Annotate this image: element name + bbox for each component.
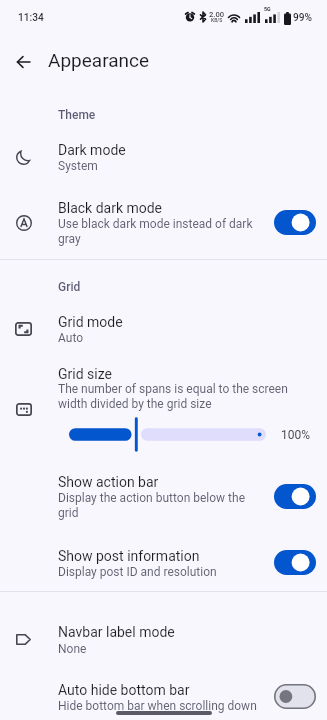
staticText: Display post ID and resolution — [58, 565, 263, 579]
staticText: None — [58, 642, 298, 656]
staticText: Use black dark mode instead of dark gray — [58, 217, 263, 246]
staticText: 2.00 — [209, 10, 225, 19]
staticText: 100% — [281, 428, 311, 442]
staticText: 11:34 — [18, 12, 44, 24]
button[interactable]: On — [274, 210, 316, 235]
staticText: Grid mode — [58, 314, 308, 330]
staticText: Hide bottom bar when scrolling down — [58, 699, 298, 713]
staticText: Appearance — [48, 49, 150, 71]
button[interactable]: Grid size — [0, 360, 327, 418]
button[interactable]: Off — [274, 684, 316, 709]
staticText: Dark mode — [58, 142, 308, 158]
staticText: Auto — [58, 331, 298, 345]
staticText: Grid size — [58, 366, 308, 382]
staticText: 5G — [264, 6, 271, 12]
staticText: Auto hide bottom bar — [58, 682, 308, 698]
staticText: 99% — [293, 12, 313, 24]
button[interactable]: Dark mode — [0, 136, 327, 181]
button[interactable]: Auto hide bottom bar — [0, 676, 327, 720]
button[interactable]: On — [274, 550, 316, 575]
staticText: Navbar label mode — [58, 624, 308, 640]
button[interactable]: On — [274, 484, 316, 509]
staticText: Show action bar — [58, 474, 308, 490]
staticText: Show post information — [58, 548, 308, 564]
button[interactable]: Navbar label mode — [0, 618, 327, 663]
button[interactable]: Show action bar — [0, 468, 327, 526]
button[interactable]: Show post information — [0, 542, 327, 587]
staticText: KB/S — [211, 17, 223, 23]
staticText: System — [58, 159, 298, 173]
staticText: Black dark mode — [58, 200, 308, 216]
button[interactable]: Grid size slider — [0, 417, 327, 452]
staticText: The number of spans is equal to the scre… — [58, 382, 298, 411]
button[interactable]: Grid mode — [0, 308, 327, 353]
button[interactable]: Black dark mode — [0, 190, 327, 248]
button[interactable]: Back — [0, 39, 46, 85]
staticText: Display the action button below the grid — [58, 491, 263, 520]
staticText: Grid — [58, 280, 81, 294]
staticText: Theme — [58, 108, 96, 122]
